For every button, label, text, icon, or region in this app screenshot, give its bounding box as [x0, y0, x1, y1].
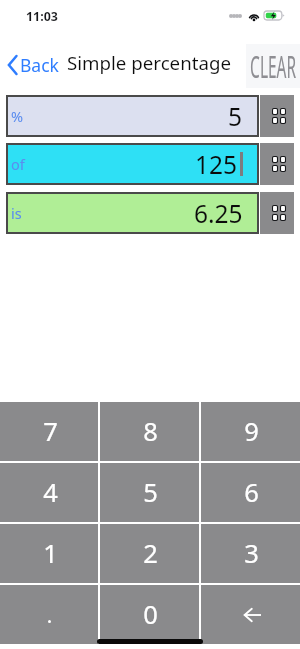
staticText: % [11, 106, 24, 126]
staticText: 6 [244, 475, 259, 510]
button[interactable]: 3 [201, 524, 300, 583]
button[interactable]: 2 [100, 524, 199, 583]
button[interactable]: 1 [0, 524, 98, 583]
staticText: CLEAR [250, 46, 296, 87]
button[interactable]: 7 [0, 402, 98, 461]
button[interactable]: Show number pad [260, 143, 294, 185]
button[interactable]: 5 [100, 463, 199, 522]
button[interactable]: 9 [201, 402, 300, 461]
staticText: 1 [43, 536, 58, 571]
button[interactable]: 0 [100, 585, 199, 644]
staticText: 9 [244, 414, 259, 449]
button[interactable]: CLEAR [246, 44, 300, 88]
staticText: 6.25 [194, 197, 243, 230]
button[interactable]: Back [0, 49, 67, 81]
button[interactable]: Show number pad [260, 192, 294, 234]
staticText: 0 [143, 597, 158, 632]
staticText: 4 [43, 475, 58, 510]
button[interactable]: of [6, 143, 259, 185]
staticText: 11:03 [26, 8, 58, 25]
button[interactable]: 6 [201, 463, 300, 522]
staticText: 2 [143, 536, 158, 571]
staticText: of [11, 154, 25, 174]
staticText: 3 [244, 536, 259, 571]
button[interactable]: is [6, 192, 259, 234]
staticText: 5 [228, 100, 243, 133]
button[interactable]: 4 [0, 463, 98, 522]
button[interactable]: % [6, 95, 259, 137]
button[interactable]: Show number pad [260, 95, 294, 137]
staticText: 7 [43, 414, 58, 449]
staticText: Simple percentage [67, 50, 231, 75]
staticText: is [11, 203, 22, 223]
staticText: 125 [195, 148, 238, 181]
staticText: 5 [143, 475, 158, 510]
staticText: Back [20, 53, 59, 77]
button[interactable]: 8 [100, 402, 199, 461]
button[interactable]: Decimal point [0, 585, 98, 644]
button[interactable]: Backspace [201, 585, 300, 644]
staticText: 8 [143, 414, 158, 449]
